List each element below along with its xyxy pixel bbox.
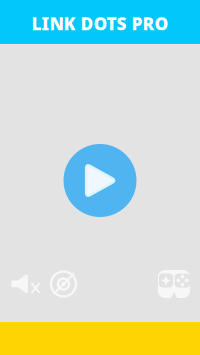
button[interactable]: More games	[158, 268, 190, 300]
button[interactable]: Music off	[41, 268, 86, 300]
button[interactable]: Sound off	[11, 268, 41, 300]
staticText: LINK DOTS PRO	[31, 12, 168, 35]
button[interactable]: Play	[63, 144, 136, 217]
